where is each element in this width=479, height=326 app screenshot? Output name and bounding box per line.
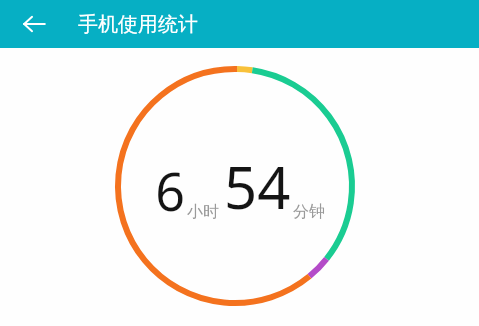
staticText: 54 [224,147,291,226]
staticText: 分钟 [293,202,325,222]
staticText: 手机使用统计 [78,12,198,37]
button[interactable]: 6 [155,147,325,226]
button[interactable]: Back [16,6,52,42]
staticText: 小时 [187,202,219,222]
staticText: 6 [155,155,185,226]
